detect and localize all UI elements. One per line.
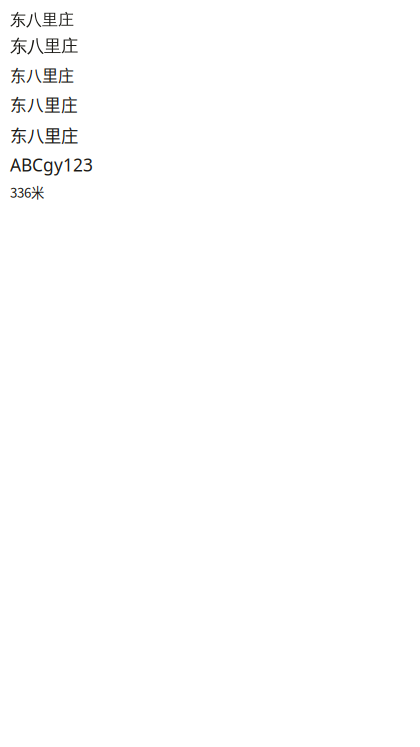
staticText: 东八里庄 (10, 92, 78, 116)
staticText: ABCgy123 (10, 153, 93, 176)
staticText: 东八里庄 (10, 10, 74, 30)
staticText: 东八里庄 (10, 63, 74, 86)
staticText: 东八里庄 (10, 36, 78, 57)
staticText: 东八里庄 (10, 122, 78, 147)
staticText: 336米 (10, 182, 44, 202)
